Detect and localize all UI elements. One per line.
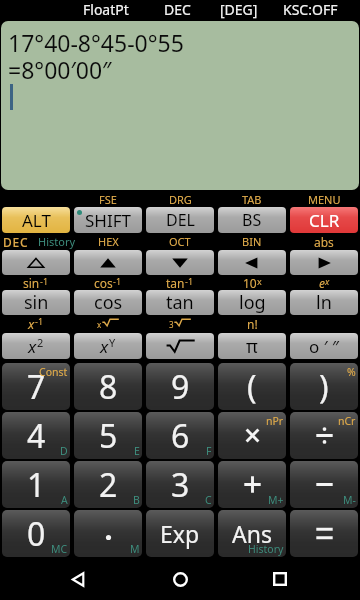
button[interactable] bbox=[290, 250, 358, 275]
button[interactable]: x bbox=[74, 333, 142, 359]
button[interactable]: M bbox=[74, 510, 142, 557]
button[interactable] bbox=[146, 250, 214, 275]
button[interactable] bbox=[2, 250, 70, 275]
button[interactable]: Exp bbox=[146, 510, 214, 557]
staticText: F bbox=[206, 444, 212, 458]
staticText: tan bbox=[166, 290, 194, 315]
button[interactable]: tan bbox=[146, 290, 214, 315]
staticText: KSC:OFF bbox=[283, 0, 338, 19]
staticText: DRG bbox=[169, 192, 192, 207]
staticText: FSE bbox=[99, 192, 117, 207]
button[interactable]: SHIFT bbox=[74, 207, 142, 233]
button[interactable]: π bbox=[218, 333, 286, 359]
staticText: OCT bbox=[169, 234, 191, 249]
button[interactable] bbox=[146, 333, 214, 359]
button[interactable]: 6 bbox=[146, 412, 214, 459]
button[interactable]: 5 bbox=[74, 412, 142, 459]
button[interactable]: 0 bbox=[2, 510, 70, 557]
staticText: ) bbox=[319, 365, 329, 409]
staticText: 6 bbox=[171, 414, 190, 458]
button[interactable]: o ′ ″ bbox=[290, 333, 358, 359]
staticText: SHIFT bbox=[85, 209, 131, 232]
button[interactable]: nPr bbox=[218, 412, 286, 459]
button[interactable]: ) bbox=[290, 363, 358, 410]
staticText: History bbox=[38, 234, 76, 249]
staticText: 2 bbox=[37, 335, 44, 350]
button[interactable]: DEL bbox=[146, 207, 214, 233]
button[interactable]: sin bbox=[2, 290, 70, 315]
staticText: o ′ ″ bbox=[309, 335, 340, 358]
staticText: Ans bbox=[232, 518, 272, 549]
staticText: 9 bbox=[171, 365, 190, 409]
button[interactable]: 1 bbox=[2, 461, 70, 508]
staticText: 3 bbox=[171, 463, 190, 507]
staticText: log bbox=[239, 290, 266, 315]
button[interactable]: 7 bbox=[2, 363, 70, 410]
staticText: -1 bbox=[35, 315, 44, 327]
staticText: -1 bbox=[113, 275, 122, 287]
staticText: x bbox=[28, 335, 37, 358]
staticText: MENU bbox=[308, 192, 341, 207]
staticText: cos bbox=[94, 290, 123, 315]
staticText: nCr bbox=[338, 414, 356, 428]
staticText: History bbox=[248, 542, 284, 556]
button[interactable]: 4 bbox=[2, 412, 70, 459]
staticText: % bbox=[347, 365, 356, 379]
button[interactable]: Ans bbox=[218, 510, 286, 557]
staticText: BIN bbox=[242, 234, 262, 249]
button[interactable]: x bbox=[2, 333, 70, 359]
staticText: 0 bbox=[27, 512, 46, 556]
staticText: π bbox=[246, 334, 258, 359]
button[interactable]: 3 bbox=[146, 461, 214, 508]
button[interactable] bbox=[218, 250, 286, 275]
staticText: 1 bbox=[27, 463, 46, 507]
staticText: x bbox=[257, 275, 262, 287]
staticText: TAB bbox=[242, 192, 262, 207]
button[interactable]: 2 bbox=[74, 461, 142, 508]
staticText: M- bbox=[343, 493, 356, 507]
staticText: -1 bbox=[185, 275, 194, 287]
button[interactable]: Recents bbox=[260, 559, 300, 599]
button[interactable]: log bbox=[218, 290, 286, 315]
button[interactable]: nCr bbox=[290, 412, 358, 459]
staticText: abs bbox=[314, 234, 334, 250]
staticText: B bbox=[133, 493, 140, 507]
staticText: E bbox=[134, 444, 140, 458]
staticText: Exp bbox=[160, 518, 200, 549]
button[interactable]: M- bbox=[290, 461, 358, 508]
staticText: MC bbox=[51, 542, 68, 556]
button[interactable] bbox=[74, 250, 142, 275]
button[interactable]: 9 bbox=[146, 363, 214, 410]
staticText: BS bbox=[242, 209, 262, 231]
staticText: tan bbox=[166, 275, 185, 290]
staticText: M bbox=[130, 542, 140, 556]
button[interactable]: CLR bbox=[290, 207, 358, 233]
button[interactable]: ln bbox=[290, 290, 358, 315]
button[interactable]: Back bbox=[58, 559, 98, 599]
staticText: [DEG] bbox=[220, 0, 258, 19]
button[interactable]: ALT bbox=[2, 207, 70, 233]
staticText: 5 bbox=[99, 414, 118, 458]
staticText: -1 bbox=[40, 275, 49, 287]
staticText: 7 bbox=[27, 365, 46, 409]
staticText: 4 bbox=[27, 414, 46, 458]
staticText: 10 bbox=[243, 275, 257, 290]
button[interactable] bbox=[290, 510, 358, 557]
button[interactable]: ( bbox=[218, 363, 286, 410]
staticText: cos bbox=[94, 275, 113, 290]
staticText: x bbox=[28, 315, 35, 333]
button[interactable]: BS bbox=[218, 207, 286, 233]
staticText: CLR bbox=[309, 209, 340, 232]
staticText: nPr bbox=[266, 414, 284, 428]
button[interactable]: 8 bbox=[74, 363, 142, 410]
button[interactable]: cos bbox=[74, 290, 142, 315]
staticText: x bbox=[100, 335, 109, 358]
staticText: M+ bbox=[268, 493, 284, 507]
staticText: FloatPt bbox=[83, 0, 129, 19]
staticText: ALT bbox=[22, 209, 51, 232]
button[interactable]: M+ bbox=[218, 461, 286, 508]
staticText: DEL bbox=[166, 209, 195, 231]
staticText: DEC bbox=[3, 234, 29, 250]
button[interactable]: Home bbox=[160, 559, 200, 599]
staticText: n! bbox=[247, 316, 258, 332]
